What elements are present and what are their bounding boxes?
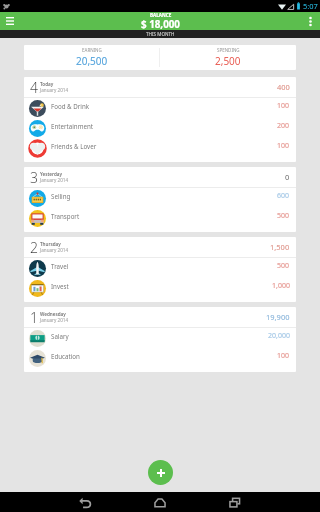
staticText: 500 — [277, 261, 290, 271]
staticText: 19,900 — [266, 312, 290, 322]
staticText: 20,500 — [76, 54, 108, 68]
staticText: BALANCE — [150, 12, 172, 18]
staticText: 0 — [285, 172, 290, 182]
button[interactable]: Selling — [29, 188, 290, 208]
staticText: Yesterday — [40, 171, 63, 177]
staticText: THIS MONTH — [146, 31, 175, 37]
staticText: 200 — [277, 121, 290, 131]
button[interactable]: Invest — [29, 278, 290, 298]
staticText: 2,500 — [215, 54, 241, 68]
button[interactable]: More options — [300, 12, 320, 30]
staticText: 100 — [277, 101, 290, 111]
button[interactable]: Add transaction — [148, 460, 173, 485]
staticText: Travel — [51, 262, 69, 270]
staticText: 4 — [30, 78, 38, 97]
staticText: 100 — [277, 141, 290, 151]
button[interactable]: 2 — [30, 237, 290, 257]
staticText: $ 18,000 — [141, 18, 180, 30]
staticText: January 2014 — [40, 177, 69, 183]
staticText: 2 — [30, 238, 38, 257]
button[interactable]: Back — [65, 492, 105, 512]
staticText: Food & Drink — [51, 102, 90, 110]
button[interactable]: 3 — [30, 167, 290, 187]
staticText: 3 — [30, 168, 38, 187]
button[interactable]: Friends & Lover — [29, 138, 290, 158]
staticText: Entertainment — [51, 122, 94, 130]
staticText: Selling — [51, 192, 71, 200]
button[interactable]: 4 — [30, 77, 290, 97]
staticText: 100 — [277, 351, 290, 361]
button[interactable]: THIS MONTH — [0, 30, 320, 38]
staticText: 1 — [30, 308, 38, 327]
button[interactable]: Entertainment — [29, 118, 290, 138]
button[interactable]: Education — [29, 348, 290, 368]
staticText: 400 — [277, 82, 290, 92]
staticText: Invest — [51, 282, 69, 290]
button[interactable]: Food & Drink — [29, 98, 290, 118]
button[interactable]: Menu — [0, 12, 19, 30]
staticText: January 2014 — [40, 247, 69, 253]
staticText: January 2014 — [40, 87, 69, 93]
staticText: 1,500 — [270, 242, 290, 252]
staticText: 1,000 — [272, 281, 290, 291]
staticText: SPENDING — [217, 47, 240, 53]
button[interactable]: Salary — [29, 328, 290, 348]
staticText: Transport — [51, 212, 80, 220]
button[interactable]: Travel — [29, 258, 290, 278]
staticText: Education — [51, 352, 80, 360]
button[interactable]: EARNING — [24, 45, 159, 70]
button[interactable]: 1 — [30, 307, 290, 327]
button[interactable]: Transport — [29, 208, 290, 228]
staticText: Wednesday — [40, 311, 66, 317]
button[interactable]: Recent apps — [215, 492, 255, 512]
staticText: 5:07 — [303, 1, 318, 11]
staticText: Salary — [51, 332, 69, 340]
staticText: Today — [40, 81, 54, 87]
staticText: Friends & Lover — [51, 142, 97, 150]
button[interactable]: Home — [140, 492, 180, 512]
staticText: 20,000 — [268, 331, 290, 341]
staticText: January 2014 — [40, 317, 69, 323]
staticText: EARNING — [82, 47, 102, 53]
staticText: 500 — [277, 211, 290, 221]
staticText: Thursday — [40, 241, 61, 247]
button[interactable]: SPENDING — [160, 45, 296, 70]
staticText: 600 — [277, 191, 290, 201]
